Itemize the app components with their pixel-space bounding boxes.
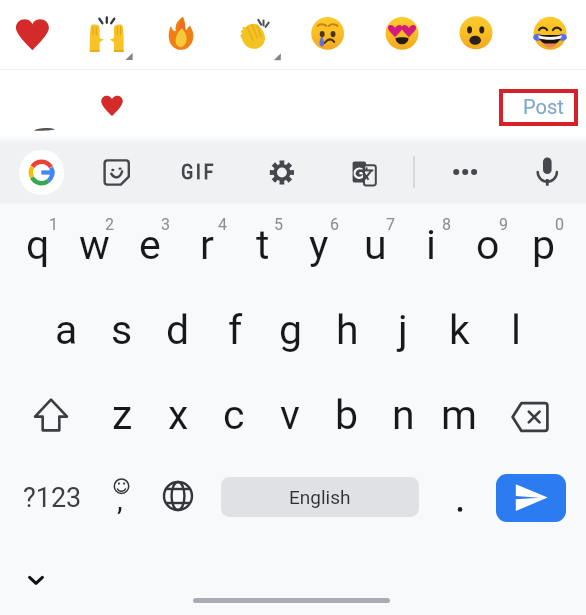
button[interactable]: 8 [403, 207, 459, 283]
button[interactable]: v [262, 377, 318, 453]
button[interactable]: Google search [17, 148, 67, 198]
button[interactable]: f [207, 292, 263, 368]
button[interactable]: GIF [175, 149, 223, 197]
button[interactable]: 4 [179, 207, 235, 283]
button[interactable]: Switch language [150, 466, 206, 526]
staticText: 1 [49, 215, 58, 234]
staticText: , [117, 483, 123, 517]
staticText: y [309, 221, 329, 269]
button[interactable]: More options [441, 149, 489, 197]
staticText: English [289, 486, 351, 508]
button[interactable]: Heart eyes [372, 3, 432, 63]
staticText: ?123 [23, 482, 82, 514]
staticText: p [532, 221, 556, 269]
button[interactable]: Settings [258, 149, 306, 197]
button[interactable]: m [431, 377, 487, 453]
button[interactable]: 6 [291, 207, 347, 283]
staticText: 5 [274, 215, 283, 234]
staticText: Post [523, 95, 564, 118]
button[interactable]: n [375, 377, 431, 453]
staticText: 2 [105, 215, 114, 234]
button[interactable]: 9 [460, 207, 516, 283]
staticText: o [476, 221, 500, 269]
staticText: v [280, 391, 300, 439]
staticText: 7 [386, 215, 395, 234]
button[interactable]: Shift [23, 385, 79, 445]
button[interactable]: j [375, 292, 431, 368]
button[interactable]: 3 [122, 207, 178, 283]
button[interactable]: 7 [347, 207, 403, 283]
button[interactable]: Surprised face [446, 3, 506, 63]
button[interactable]: Post [503, 93, 574, 122]
staticText: k [449, 306, 470, 354]
button[interactable]: 1 [10, 207, 66, 283]
button[interactable]: Clapping hands [223, 3, 283, 63]
staticText: e [139, 221, 161, 269]
button[interactable]: b [319, 377, 375, 453]
staticText: t [256, 221, 270, 269]
button[interactable]: l [488, 292, 544, 368]
button[interactable]: English [221, 477, 419, 517]
button[interactable]: g [263, 292, 319, 368]
button[interactable]: Face with tears of joy [520, 3, 580, 63]
staticText: s [111, 306, 133, 354]
staticText: a [55, 306, 78, 354]
staticText: q [26, 221, 50, 269]
staticText: m [441, 391, 477, 439]
button[interactable]: Crying face [298, 3, 358, 63]
button[interactable]: k [431, 292, 487, 368]
button[interactable]: Fire [149, 3, 209, 63]
button[interactable]: s [94, 292, 150, 368]
button[interactable]: Red heart [1, 3, 61, 63]
button[interactable]: d [150, 292, 206, 368]
staticText: i [426, 221, 436, 269]
staticText: n [392, 391, 415, 439]
button[interactable]: h [319, 292, 375, 368]
button[interactable]: ?123 [0, 474, 102, 522]
button[interactable]: Stickers [93, 149, 141, 197]
button[interactable]: x [150, 377, 206, 453]
button[interactable]: Raising hands [75, 3, 135, 63]
staticText: 4 [218, 215, 227, 234]
staticText: d [166, 306, 190, 354]
staticText: c [223, 391, 245, 439]
button[interactable]: 0 [516, 207, 572, 283]
staticText: u [364, 221, 387, 269]
staticText: g [279, 306, 303, 354]
staticText: 9 [499, 215, 508, 234]
staticText: l [511, 306, 521, 354]
staticText: f [228, 306, 243, 354]
button[interactable]: Backspace [502, 387, 558, 447]
button[interactable]: 2 [66, 207, 122, 283]
staticText: r [200, 221, 214, 269]
staticText: z [112, 391, 133, 439]
button[interactable]: Period [432, 468, 488, 528]
button[interactable]: Emoji and comma [93, 468, 149, 528]
staticText: GIF [181, 160, 216, 185]
staticText: w [79, 221, 110, 269]
staticText: 8 [442, 215, 451, 234]
staticText: h [336, 306, 359, 354]
button[interactable]: 5 [235, 207, 291, 283]
staticText: b [335, 391, 359, 439]
staticText: 0 [555, 215, 564, 234]
button[interactable]: Hide keyboard [8, 550, 64, 610]
staticText: j [398, 306, 408, 354]
staticText: 3 [161, 215, 170, 234]
button[interactable]: Send [496, 474, 566, 522]
button[interactable]: z [94, 377, 150, 453]
button[interactable]: c [206, 377, 262, 453]
staticText: x [168, 391, 189, 439]
button[interactable]: a [38, 292, 94, 368]
button[interactable]: Voice input [523, 149, 571, 197]
button[interactable]: Translate [340, 149, 388, 197]
staticText: 6 [330, 215, 339, 234]
